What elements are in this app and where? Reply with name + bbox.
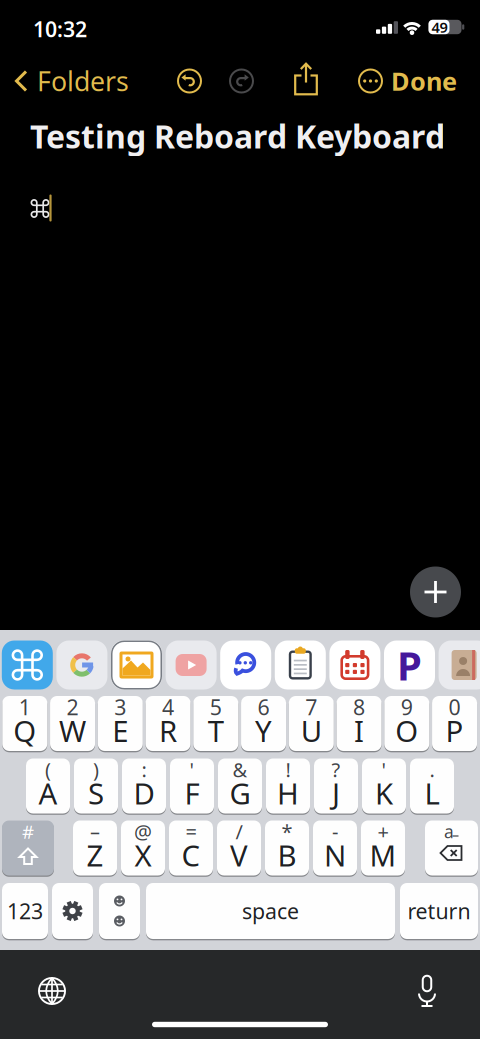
button[interactable]: Done — [377, 59, 457, 103]
staticText: J — [332, 773, 340, 812]
button[interactable]: Undo — [174, 66, 204, 96]
staticText: 3 — [114, 693, 126, 721]
staticText: a — [444, 820, 454, 843]
button[interactable]: Folders — [14, 59, 174, 103]
staticText: – — [90, 818, 100, 845]
button[interactable]: space — [146, 882, 395, 940]
button[interactable]: A — [26, 757, 70, 814]
button[interactable]: P — [432, 695, 477, 752]
staticText: H — [277, 773, 299, 812]
staticText: ? — [331, 756, 340, 783]
button[interactable]: T — [193, 695, 238, 752]
staticText: D — [133, 773, 154, 812]
staticText: ' — [189, 756, 194, 783]
staticText: O — [395, 711, 418, 750]
staticText: ) — [93, 756, 99, 783]
staticText: / — [235, 818, 242, 845]
staticText: & — [232, 756, 247, 783]
button[interactable]: More — [355, 66, 385, 96]
button[interactable]: C — [169, 819, 213, 876]
staticText: N — [324, 835, 346, 874]
staticText: Testing Reboard Keyboard — [30, 115, 445, 157]
staticText: 7 — [305, 693, 317, 721]
staticText: B — [277, 835, 296, 874]
button[interactable]: D — [122, 757, 166, 814]
staticText: ' — [381, 756, 386, 783]
staticText: L — [424, 773, 439, 812]
button[interactable]: U — [289, 695, 334, 752]
staticText: T — [208, 711, 224, 750]
button[interactable]: P — [384, 640, 435, 689]
staticText: @ — [134, 818, 152, 845]
button[interactable]: K — [362, 757, 406, 814]
button[interactable]: YouTube — [166, 640, 217, 689]
button[interactable]: Settings — [52, 882, 93, 940]
staticText: K — [375, 773, 393, 812]
button[interactable]: Dictation — [405, 969, 449, 1013]
staticText: R — [159, 711, 177, 750]
button[interactable]: H — [266, 757, 310, 814]
button[interactable]: I — [337, 695, 382, 752]
staticText: * — [281, 818, 292, 845]
staticText: 5 — [210, 693, 222, 721]
button[interactable]: Numbers — [2, 882, 48, 940]
button[interactable]: Delete — [425, 819, 478, 876]
button[interactable]: Redo — [226, 66, 256, 96]
staticText: # — [22, 819, 34, 844]
button[interactable]: E — [98, 695, 143, 752]
button[interactable]: G — [218, 757, 262, 814]
button[interactable]: Photos — [111, 640, 162, 689]
button[interactable]: N — [313, 819, 357, 876]
button[interactable]: Messages — [220, 640, 271, 689]
button[interactable]: Google — [56, 640, 107, 689]
staticText: 0 — [449, 693, 461, 721]
button[interactable]: V — [217, 819, 261, 876]
button[interactable]: O — [384, 695, 429, 752]
button[interactable]: Q — [2, 695, 47, 752]
button[interactable]: Shift — [2, 819, 54, 876]
staticText: X — [134, 835, 151, 874]
button[interactable]: Y — [241, 695, 286, 752]
button[interactable]: F — [170, 757, 214, 814]
staticText: ! — [285, 756, 290, 783]
staticText: 123 — [7, 897, 43, 925]
staticText: C — [181, 835, 200, 874]
button[interactable]: M — [361, 819, 405, 876]
button[interactable]: J — [314, 757, 358, 814]
staticText: 8 — [353, 693, 365, 721]
button[interactable]: B — [265, 819, 309, 876]
staticText: M — [369, 835, 396, 874]
button[interactable]: Next keyboard — [30, 969, 74, 1013]
staticText: F — [184, 773, 199, 812]
staticText: 2 — [66, 693, 78, 721]
button[interactable]: Z — [73, 819, 117, 876]
button[interactable]: Calendar — [329, 640, 380, 689]
button[interactable]: R — [146, 695, 191, 752]
button[interactable]: Clipboard — [275, 640, 326, 689]
staticText: A — [38, 773, 57, 812]
staticText: Y — [255, 711, 272, 750]
staticText: S — [88, 773, 104, 812]
staticText: W — [59, 711, 86, 750]
button[interactable]: Share — [294, 62, 318, 95]
staticText: 4 — [162, 693, 174, 721]
staticText: . — [429, 756, 434, 783]
staticText: ( — [45, 756, 51, 783]
staticText: Q — [13, 711, 36, 750]
button[interactable]: L — [410, 757, 454, 814]
button[interactable]: Contacts — [439, 640, 480, 689]
button[interactable]: W — [50, 695, 95, 752]
button[interactable]: S — [74, 757, 118, 814]
button[interactable]: X — [121, 819, 165, 876]
button[interactable]: New note — [410, 566, 461, 617]
staticText: P — [397, 638, 422, 691]
button[interactable]: Command keyboard — [2, 640, 53, 689]
staticText: P — [446, 711, 464, 750]
staticText: U — [301, 711, 322, 750]
button[interactable]: Emoji — [99, 882, 140, 940]
staticText: = — [185, 818, 196, 845]
staticText: Z — [86, 835, 103, 874]
staticText: 6 — [258, 693, 270, 721]
staticText: return — [407, 897, 470, 925]
button[interactable]: return — [400, 882, 478, 940]
